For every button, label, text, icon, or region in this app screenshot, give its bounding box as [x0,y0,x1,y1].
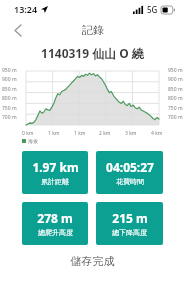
staticText: 800 m [168,95,183,102]
staticText: 950 m [2,67,17,74]
staticText: 700 m [168,114,183,121]
staticText: 花費時間 [116,177,144,186]
staticText: 總下降高度 [112,228,147,237]
staticText: 850 m [2,86,17,93]
staticText: 3 km [125,130,137,137]
staticText: 1 km [74,130,86,137]
staticText: 5G [147,4,158,15]
staticText: 0 km [22,130,34,137]
staticText: 278 m [37,210,73,226]
button[interactable]: 1.97 km [22,151,88,194]
staticText: 1140319 仙山 O 繞 [0,45,185,61]
button[interactable]: Back [8,20,28,40]
staticText: 1.97 km [32,159,79,175]
button[interactable]: 215 m [96,202,163,245]
staticText: 累計距離 [41,177,69,186]
staticText: 750 m [168,105,183,112]
button[interactable]: 278 m [22,202,88,245]
staticText: 2 km [99,130,111,137]
staticText: 記錄 [82,23,104,37]
staticText: 04:05:27 [106,159,154,175]
staticText: 儲存完成 [0,254,185,268]
staticText: 4 km [151,130,163,137]
staticText: 總爬升高度 [38,228,73,237]
staticText: 700 m [2,114,17,121]
staticText: 750 m [2,105,17,112]
staticText: 950 m [168,67,183,74]
staticText: 13:24 [14,3,38,15]
staticText: 海拔 [28,138,38,144]
staticText: 800 m [2,95,17,102]
staticText: 900 m [168,76,183,83]
staticText: 850 m [168,86,183,93]
button[interactable]: 04:05:27 [96,151,163,194]
staticText: 1 km [48,130,60,137]
staticText: 900 m [2,76,17,83]
staticText: 215 m [112,210,148,226]
